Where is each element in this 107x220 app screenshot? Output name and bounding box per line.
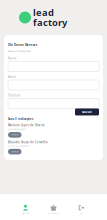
staticText: Olá Danna Menezes (8, 43, 37, 47)
staticText: Sair (80, 212, 83, 214)
staticText: Convidada (11, 134, 19, 136)
staticText: mariana.silveira@email.com (8, 128, 26, 130)
staticText: Indicações (21, 212, 29, 214)
staticText: Nome (8, 57, 17, 60)
button[interactable]: Sair (69, 205, 93, 214)
button[interactable]: Indicações (13, 205, 37, 214)
staticText: eduardo.carvalho@email.com (8, 145, 29, 147)
button[interactable]: SALVAR (75, 108, 99, 115)
staticText: factory (33, 16, 67, 29)
staticText: lead (33, 6, 54, 19)
button[interactable]: Recompensas (41, 205, 65, 214)
staticText: Mariana Lopes da Silveira (8, 123, 45, 127)
staticText: Indique seus conhecidos abaixo (8, 50, 31, 52)
staticText: Eduardo Souza de Carvalho (8, 140, 48, 144)
staticText: SALVAR (82, 110, 92, 114)
staticText: Suas 3 indicações (8, 117, 33, 121)
staticText: Convidado (11, 151, 19, 153)
staticText: Telefone (8, 94, 21, 97)
staticText: Email (8, 75, 16, 79)
button[interactable]: Convidada (8, 132, 21, 138)
button[interactable]: Convidado (8, 149, 21, 154)
staticText: Recompensas (48, 212, 59, 214)
